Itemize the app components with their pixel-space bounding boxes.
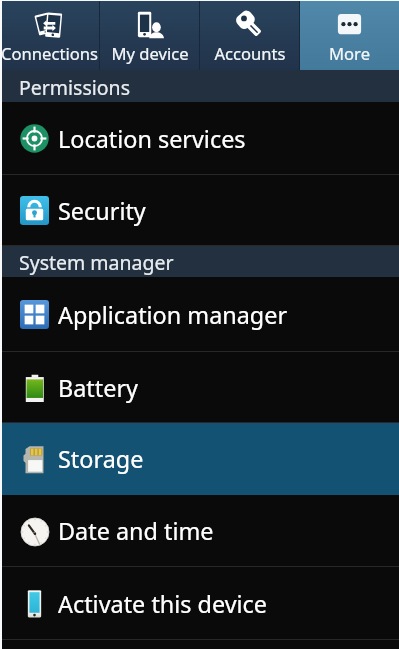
- button[interactable]: Battery: [0, 352, 399, 423]
- staticText: Location services: [58, 123, 246, 155]
- staticText: More: [329, 42, 370, 65]
- staticText: Activate this device: [58, 588, 268, 620]
- button[interactable]: Location services: [0, 102, 399, 175]
- button[interactable]: Connections: [0, 0, 99, 70]
- button[interactable]: Date and time: [0, 495, 399, 567]
- button[interactable]: Accounts: [200, 0, 299, 70]
- button[interactable]: Security: [0, 175, 399, 246]
- staticText: System manager: [19, 249, 174, 276]
- button[interactable]: Activate this device: [0, 567, 399, 640]
- button[interactable]: My device: [100, 0, 199, 70]
- staticText: Battery: [58, 372, 138, 404]
- staticText: My device: [111, 42, 189, 65]
- button[interactable]: Storage: [0, 423, 399, 495]
- staticText: Security: [58, 195, 146, 227]
- button[interactable]: More: [300, 0, 399, 70]
- button[interactable]: Application manager: [0, 277, 399, 352]
- staticText: Connections: [1, 42, 98, 65]
- staticText: Application manager: [58, 299, 288, 331]
- staticText: Date and time: [58, 515, 214, 547]
- staticText: Storage: [58, 443, 144, 475]
- staticText: Accounts: [214, 42, 286, 65]
- staticText: Permissions: [19, 74, 131, 101]
